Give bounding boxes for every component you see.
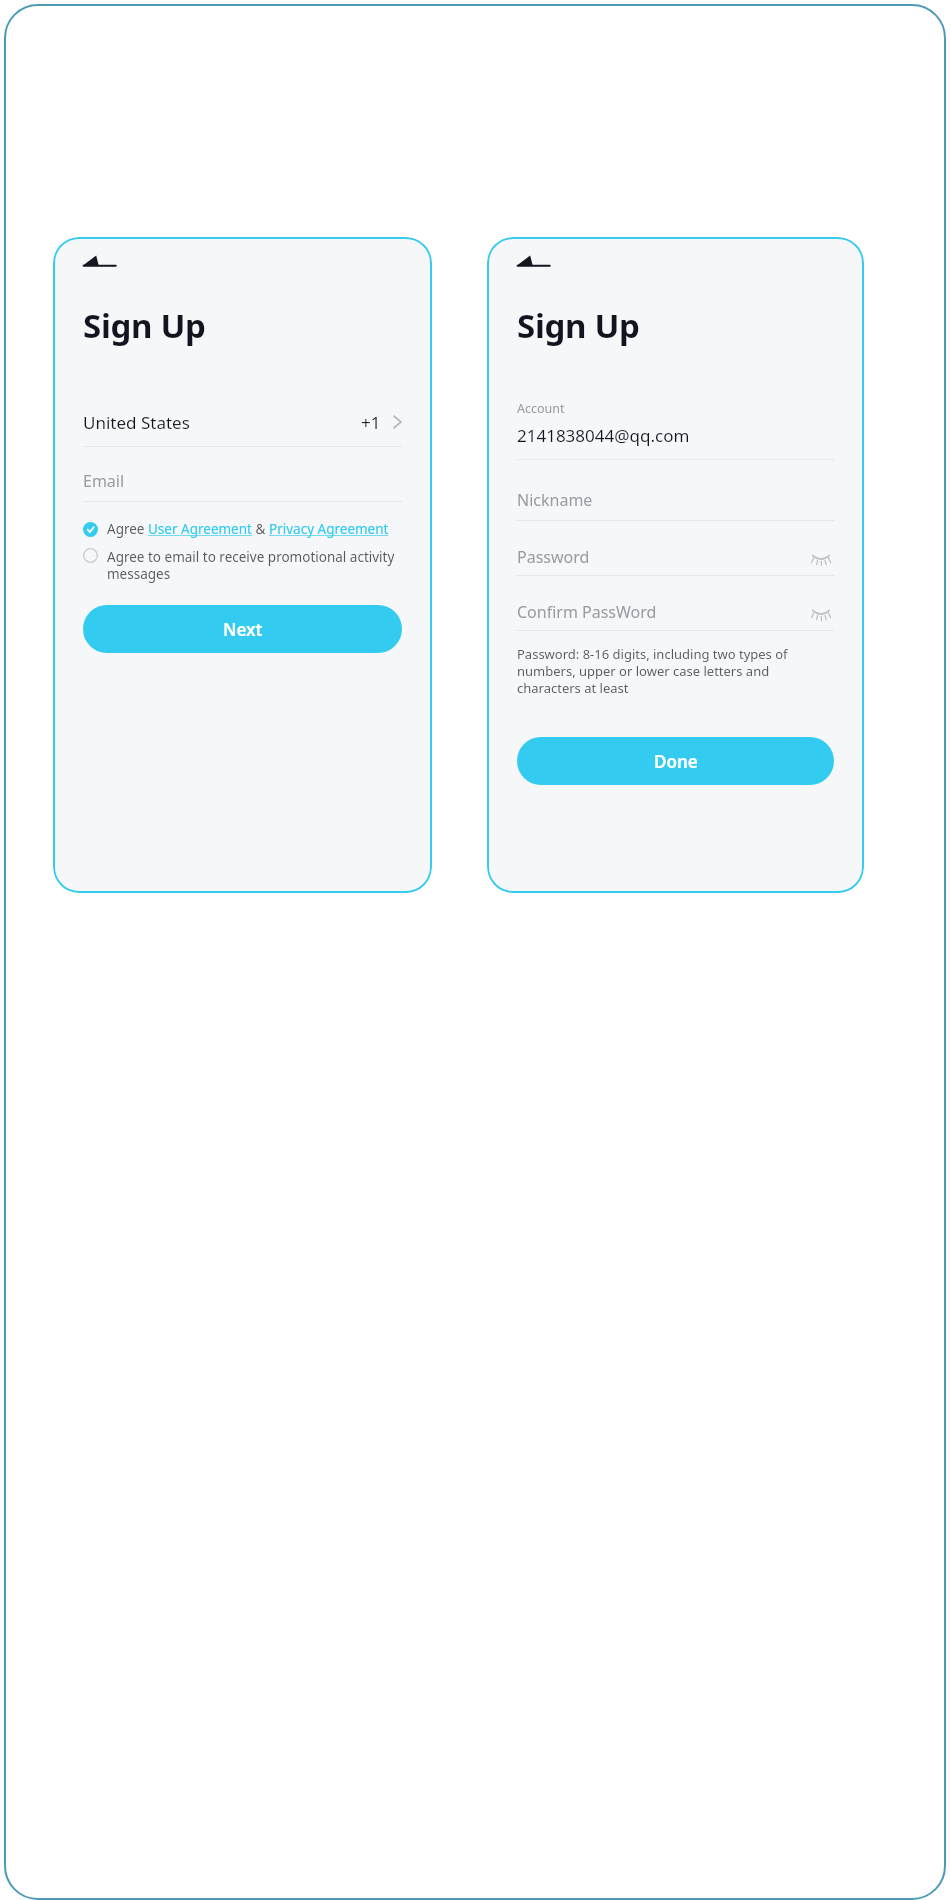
staticText: Next <box>223 618 263 641</box>
staticText: Confirm PassWord <box>517 601 657 623</box>
staticText: Password <box>517 546 590 568</box>
button[interactable]: Back <box>513 247 553 281</box>
staticText: Email <box>83 470 125 492</box>
button[interactable]: United States <box>83 398 402 446</box>
staticText: Sign Up <box>517 303 640 348</box>
staticText: User Agreement <box>148 520 252 538</box>
staticText: Done <box>654 750 698 773</box>
staticText: Password: 8-16 digits, including two typ… <box>517 645 834 697</box>
staticText: Nickname <box>517 489 593 511</box>
button[interactable]: Agree to email to receive promotional ac… <box>83 548 402 583</box>
staticText: United States <box>83 411 190 434</box>
button[interactable]: Next <box>83 605 402 653</box>
staticText: 2141838044@qq.com <box>517 424 690 447</box>
staticText: Sign Up <box>83 303 206 348</box>
staticText: +1 <box>361 411 381 434</box>
staticText: & <box>252 520 269 538</box>
staticText: Account <box>517 400 565 417</box>
button[interactable]: Show password <box>808 599 834 625</box>
staticText: Privacy Agreement <box>269 520 389 538</box>
button[interactable]: Show password <box>808 544 834 570</box>
staticText: Agree <box>107 520 148 538</box>
button[interactable]: Done <box>517 737 834 785</box>
button[interactable]: Back <box>79 247 119 281</box>
button[interactable]: Agree <box>83 520 402 538</box>
staticText: Agree to email to receive promotional ac… <box>107 548 402 583</box>
